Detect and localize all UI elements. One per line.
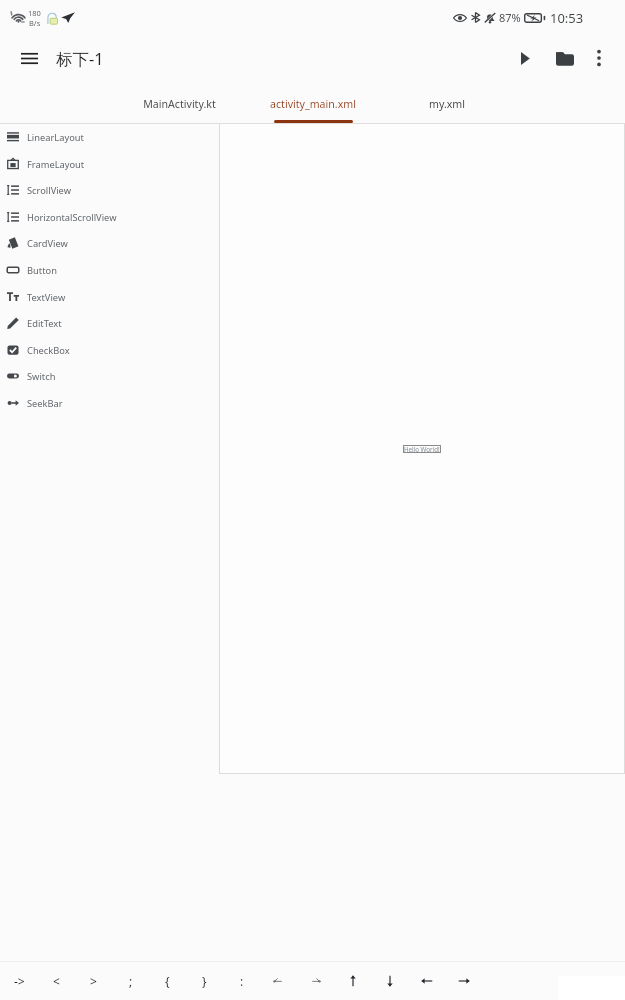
staticText: 10:53	[550, 9, 584, 27]
button[interactable]: ScrollView	[0, 179, 219, 201]
button[interactable]: Navigation menu	[9, 38, 49, 78]
button[interactable]: FrameLayout	[0, 153, 219, 175]
button[interactable]: SeekBar	[0, 392, 219, 414]
button[interactable]: Hello World!	[403, 445, 441, 453]
staticText: SeekBar	[27, 397, 63, 410]
button[interactable]: ;	[112, 961, 149, 1000]
button[interactable]: <	[38, 961, 75, 1000]
button[interactable]: Button	[0, 259, 219, 281]
button[interactable]: activity_main.xml	[246, 85, 380, 123]
staticText: B/s	[29, 18, 41, 28]
staticText: HorizontalScrollView	[27, 211, 117, 224]
staticText: ->	[14, 973, 25, 989]
button[interactable]: Move down	[371, 961, 408, 1000]
staticText: <	[53, 973, 60, 989]
button[interactable]: my.xml	[380, 85, 514, 123]
staticText: 180	[28, 8, 41, 18]
staticText: {	[165, 973, 170, 989]
staticText: my.xml	[429, 97, 465, 111]
button[interactable]: {	[149, 961, 186, 1000]
button[interactable]: MainActivity.kt	[112, 85, 246, 123]
staticText: TextView	[27, 291, 66, 304]
staticText: EditText	[27, 317, 62, 330]
staticText: CardView	[27, 237, 68, 250]
button[interactable]: Move up	[334, 961, 371, 1000]
button[interactable]: :	[223, 961, 260, 1000]
button[interactable]: Open files	[545, 38, 585, 78]
staticText: Hello World!	[404, 445, 440, 453]
staticText: activity_main.xml	[270, 97, 356, 111]
staticText: LinearLayout	[27, 131, 84, 144]
button[interactable]: More options	[579, 38, 619, 78]
staticText: MainActivity.kt	[143, 97, 216, 111]
staticText: }	[202, 973, 207, 989]
staticText: :	[240, 973, 244, 989]
staticText: 标下-1	[56, 47, 104, 70]
button[interactable]: CardView	[0, 232, 219, 254]
button[interactable]: ->	[1, 961, 38, 1000]
staticText: Button	[27, 264, 57, 277]
button[interactable]: Switch	[0, 365, 219, 387]
button[interactable]: LinearLayout	[0, 126, 219, 148]
button[interactable]: Indent	[297, 961, 334, 1000]
staticText: ScrollView	[27, 184, 71, 197]
staticText: FrameLayout	[27, 158, 85, 171]
button[interactable]: Move left	[408, 961, 445, 1000]
button[interactable]: CheckBox	[0, 339, 219, 361]
button[interactable]: HorizontalScrollView	[0, 206, 219, 228]
button[interactable]: }	[186, 961, 223, 1000]
button[interactable]: Move right	[445, 961, 482, 1000]
button[interactable]: EditText	[0, 312, 219, 334]
button[interactable]: Unindent	[260, 961, 297, 1000]
staticText: CheckBox	[27, 344, 70, 357]
staticText: >	[90, 973, 97, 989]
button[interactable]: >	[75, 961, 112, 1000]
staticText: Switch	[27, 370, 56, 383]
staticText: 87%	[499, 10, 521, 25]
staticText: ;	[129, 973, 133, 989]
button[interactable]: Run	[505, 38, 545, 78]
button[interactable]: TextView	[0, 286, 219, 308]
